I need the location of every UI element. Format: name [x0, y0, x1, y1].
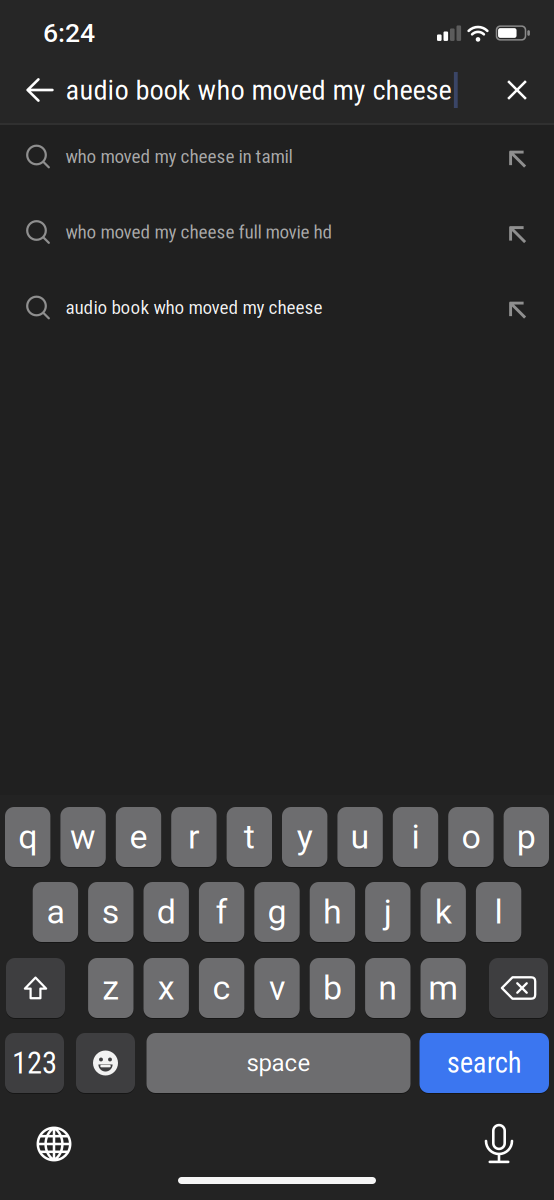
- button[interactable]: Back: [14, 64, 66, 116]
- button[interactable]: r: [171, 806, 217, 868]
- staticText: who moved my cheese in tamil: [65, 145, 292, 168]
- button[interactable]: Delete: [489, 957, 548, 1019]
- staticText: y: [297, 817, 313, 857]
- button[interactable]: p: [504, 806, 549, 868]
- staticText: g: [267, 892, 286, 932]
- button[interactable]: f: [199, 881, 244, 943]
- button[interactable]: z: [88, 957, 133, 1019]
- staticText: z: [102, 968, 119, 1008]
- staticText: u: [351, 817, 370, 857]
- staticText: v: [269, 968, 285, 1008]
- button[interactable]: m: [420, 957, 466, 1019]
- staticText: f: [216, 892, 228, 932]
- button[interactable]: e: [116, 806, 161, 868]
- button[interactable]: Shift: [6, 957, 65, 1019]
- staticText: i: [411, 817, 419, 857]
- staticText: h: [323, 892, 342, 932]
- button[interactable]: Next keyboard: [22, 1114, 86, 1174]
- staticText: o: [461, 817, 480, 857]
- button[interactable]: 123: [5, 1032, 64, 1094]
- staticText: b: [323, 968, 342, 1008]
- button[interactable]: n: [365, 957, 410, 1019]
- staticText: m: [428, 968, 458, 1008]
- staticText: d: [157, 892, 176, 932]
- button[interactable]: i: [393, 806, 438, 868]
- button[interactable]: a: [33, 881, 78, 943]
- staticText: t: [244, 817, 255, 857]
- button[interactable]: v: [254, 957, 300, 1019]
- button[interactable]: audio book who moved my cheese: [0, 270, 488, 345]
- button[interactable]: k: [420, 881, 466, 943]
- button[interactable]: h: [310, 881, 355, 943]
- button[interactable]: Insert suggestion: [489, 194, 545, 270]
- button[interactable]: b: [310, 957, 355, 1019]
- button[interactable]: Insert suggestion: [489, 270, 545, 345]
- staticText: audio book who moved my cheese: [65, 73, 451, 107]
- staticText: k: [435, 892, 452, 932]
- staticText: e: [129, 817, 147, 857]
- staticText: audio book who moved my cheese: [65, 296, 322, 319]
- staticText: search: [447, 1046, 522, 1080]
- button[interactable]: space: [146, 1032, 410, 1094]
- button[interactable]: Clear search: [491, 64, 543, 116]
- staticText: c: [213, 968, 231, 1008]
- staticText: x: [158, 968, 175, 1008]
- button[interactable]: Emoji: [76, 1032, 135, 1094]
- button[interactable]: l: [476, 881, 521, 943]
- button[interactable]: who moved my cheese in tamil: [0, 119, 488, 194]
- staticText: n: [378, 968, 397, 1008]
- button[interactable]: who moved my cheese full movie hd: [0, 194, 488, 270]
- staticText: who moved my cheese full movie hd: [65, 221, 332, 243]
- staticText: 123: [12, 1045, 57, 1081]
- staticText: space: [246, 1049, 310, 1077]
- button[interactable]: s: [88, 881, 133, 943]
- button[interactable]: t: [227, 806, 272, 868]
- staticText: p: [517, 817, 536, 857]
- button[interactable]: o: [448, 806, 494, 868]
- staticText: w: [70, 817, 96, 857]
- button[interactable]: u: [337, 806, 383, 868]
- button[interactable]: d: [143, 881, 189, 943]
- staticText: 6:24: [43, 17, 95, 49]
- button[interactable]: Insert suggestion: [489, 119, 545, 194]
- button[interactable]: g: [254, 881, 300, 943]
- button[interactable]: Dictation: [467, 1114, 531, 1174]
- button[interactable]: y: [282, 806, 327, 868]
- button[interactable]: q: [5, 806, 50, 868]
- staticText: r: [188, 817, 200, 857]
- button[interactable]: c: [199, 957, 244, 1019]
- staticText: a: [46, 892, 64, 932]
- staticText: l: [495, 892, 503, 932]
- button[interactable]: search: [419, 1032, 549, 1094]
- staticText: q: [18, 817, 37, 857]
- staticText: j: [384, 892, 392, 932]
- button[interactable]: w: [60, 806, 106, 868]
- button[interactable]: x: [143, 957, 189, 1019]
- button[interactable]: j: [365, 881, 410, 943]
- staticText: s: [102, 892, 120, 932]
